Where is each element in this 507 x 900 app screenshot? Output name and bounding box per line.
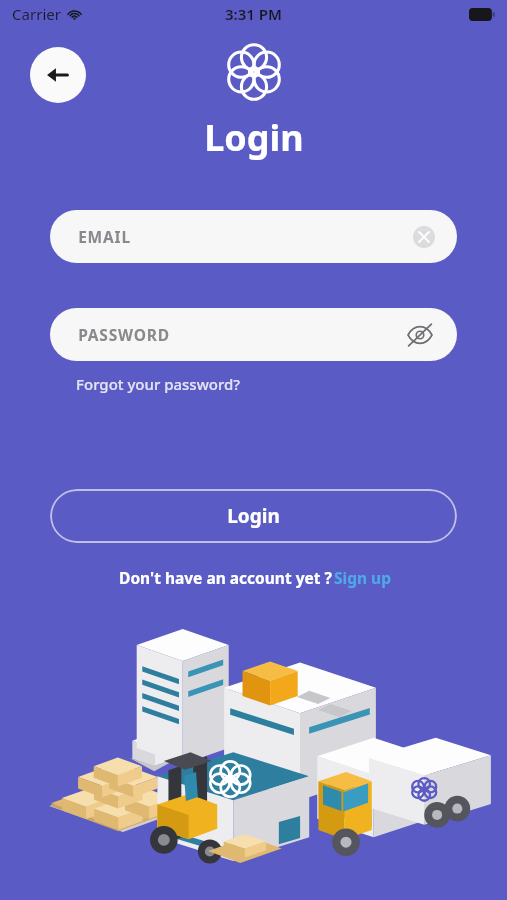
staticText: Carrier xyxy=(12,4,61,24)
button[interactable]: PASSWORD xyxy=(50,308,457,361)
staticText: PASSWORD xyxy=(78,324,170,345)
staticText: Login xyxy=(204,113,304,162)
button[interactable]: Clear email xyxy=(413,226,435,248)
button[interactable]: Back xyxy=(30,47,86,103)
button[interactable]: Show password xyxy=(403,318,437,352)
button[interactable]: Login xyxy=(50,489,457,543)
button[interactable]: Forgot your password? xyxy=(72,372,244,396)
staticText: Sign up xyxy=(334,567,391,588)
staticText: EMAIL xyxy=(78,226,131,247)
staticText: Don't have an account yet ? xyxy=(117,567,334,588)
staticText: Login xyxy=(227,503,280,529)
staticText: Forgot your password? xyxy=(76,374,240,394)
button[interactable]: Sign up xyxy=(334,567,391,588)
button[interactable]: EMAIL xyxy=(50,210,457,263)
staticText: 3:31 PM xyxy=(225,4,282,24)
